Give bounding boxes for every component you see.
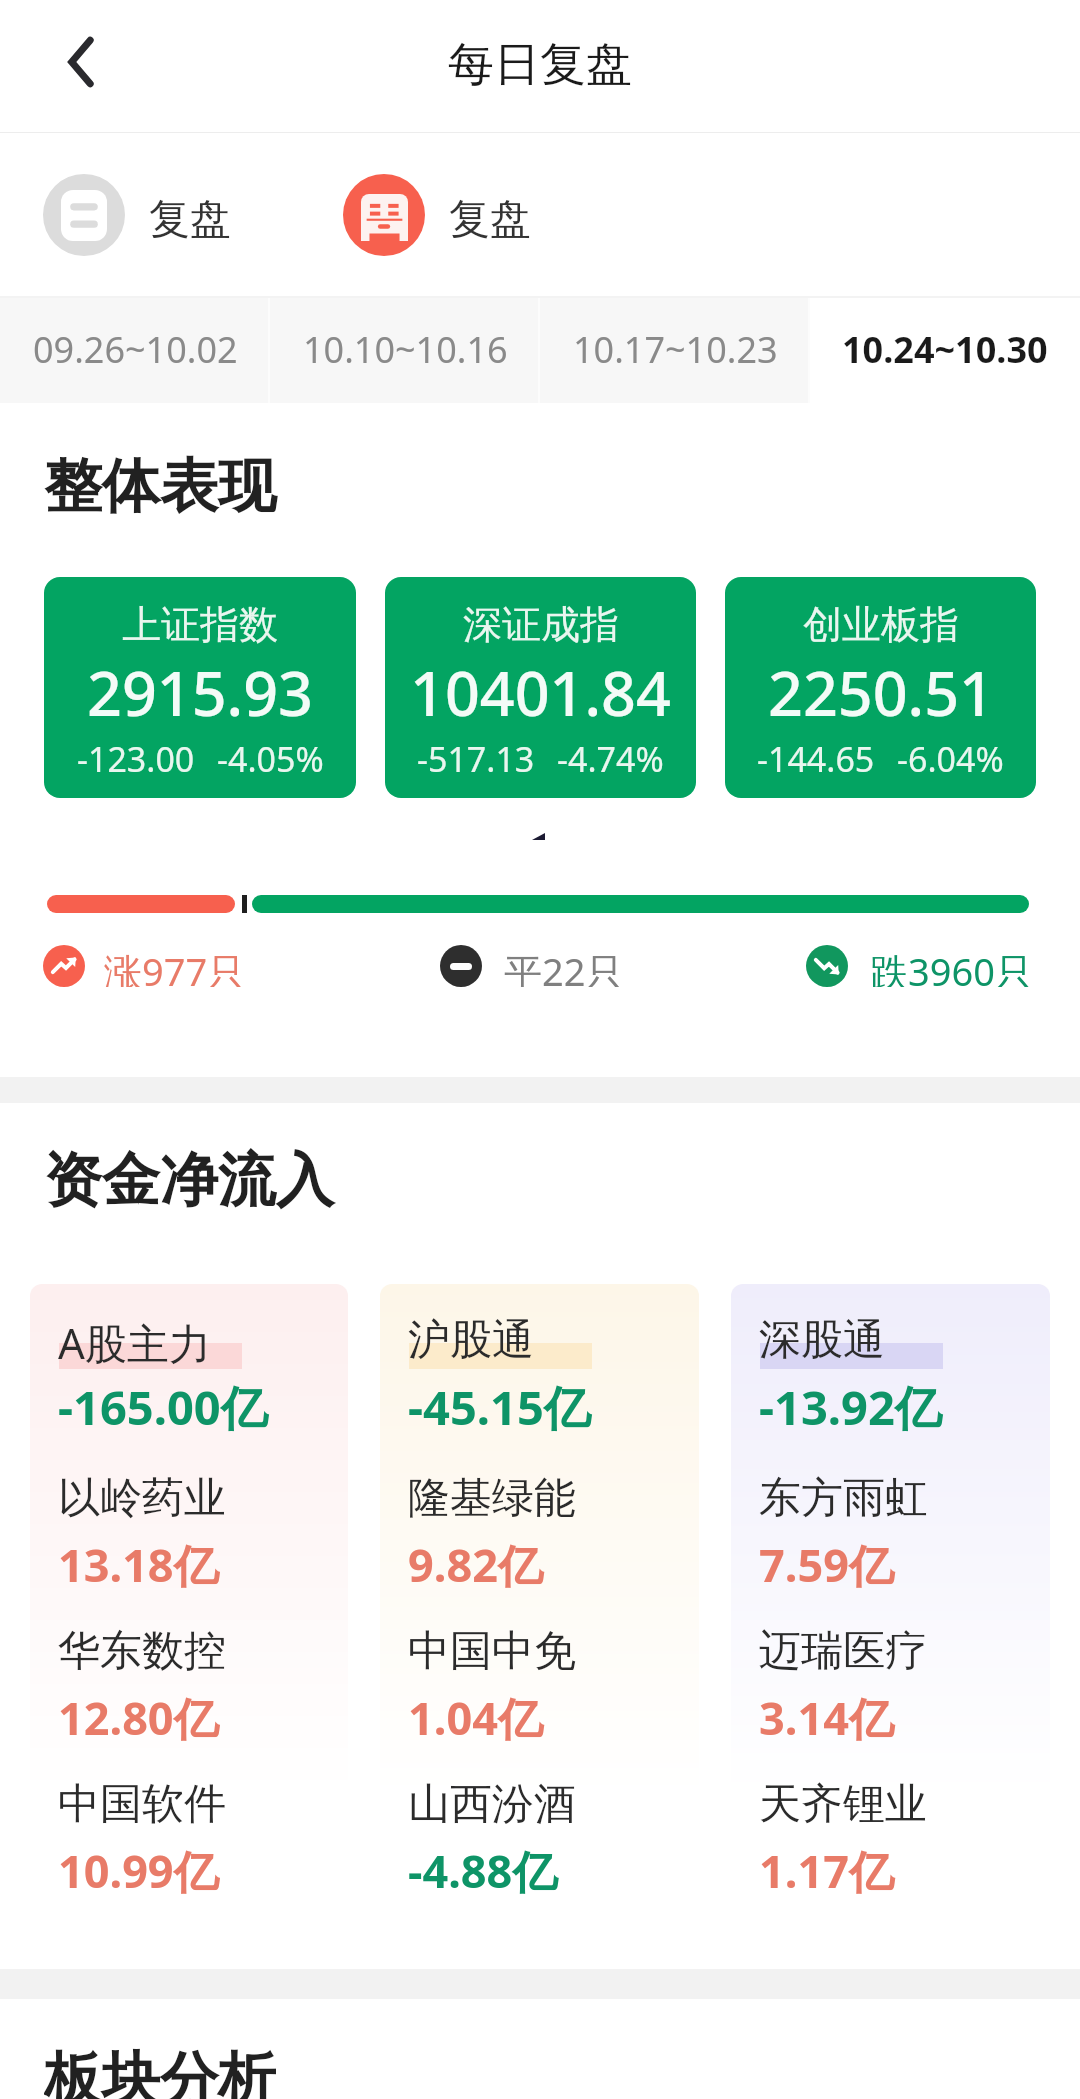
staticText: 复盘 bbox=[449, 194, 531, 246]
staticText: 12.80亿 bbox=[58, 1687, 219, 1748]
button[interactable]: Back bbox=[37, 20, 121, 104]
staticText: 创业板指 bbox=[803, 600, 959, 649]
staticText: 1.04亿 bbox=[408, 1687, 543, 1748]
button[interactable]: 09.26~10.02 bbox=[0, 296, 270, 403]
staticText: A股主力 bbox=[58, 1314, 211, 1371]
staticText: 深证成指 bbox=[463, 600, 619, 649]
staticText: 10.17~10.23 bbox=[573, 325, 778, 374]
staticText: 整体表现 bbox=[44, 450, 276, 523]
staticText: -4.74% bbox=[557, 736, 664, 782]
other: Advancing bbox=[43, 945, 85, 987]
staticText: 沪股通 bbox=[408, 1314, 534, 1367]
staticText: 复盘 bbox=[149, 194, 231, 246]
staticText: 9.82亿 bbox=[408, 1534, 543, 1595]
staticText: 09.26~10.02 bbox=[33, 325, 238, 374]
button[interactable]: 深证成指 bbox=[385, 577, 696, 798]
staticText: 东方雨虹 bbox=[759, 1472, 927, 1525]
staticText: 山西汾酒 bbox=[408, 1778, 576, 1831]
staticText: -165.00亿 bbox=[58, 1375, 268, 1439]
button[interactable]: 上证指数 bbox=[44, 577, 356, 798]
other: Unchanged bbox=[440, 945, 482, 987]
staticText: -517.13 bbox=[417, 736, 535, 782]
button[interactable]: Advancing bbox=[43, 945, 246, 987]
staticText: 10.24~10.30 bbox=[842, 325, 1048, 374]
staticText: 天齐锂业 bbox=[759, 1778, 927, 1831]
staticText: 10401.84 bbox=[410, 651, 671, 734]
staticText: -6.04% bbox=[897, 736, 1004, 782]
staticText: 3.14亿 bbox=[759, 1687, 894, 1748]
staticText: 华东数控 bbox=[58, 1625, 226, 1678]
button[interactable]: 深股通 bbox=[731, 1284, 1050, 1924]
button[interactable]: Unchanged bbox=[440, 945, 624, 987]
staticText: 涨977只 bbox=[104, 945, 246, 987]
staticText: 跌3960只 bbox=[870, 945, 1033, 987]
staticText: 以岭药业 bbox=[58, 1472, 226, 1525]
staticText: -45.15亿 bbox=[408, 1375, 591, 1439]
button[interactable]: 10.17~10.23 bbox=[540, 296, 810, 403]
staticText: -4.88亿 bbox=[408, 1840, 558, 1901]
staticText: 1.17亿 bbox=[759, 1840, 894, 1901]
button[interactable]: 10.10~10.16 bbox=[270, 296, 540, 403]
staticText: -13.92亿 bbox=[759, 1375, 942, 1439]
button[interactable]: 10.24~10.30 bbox=[810, 296, 1080, 403]
staticText: 板块分析 bbox=[44, 2043, 276, 2099]
staticText: 2915.93 bbox=[87, 651, 313, 734]
staticText: 迈瑞医疗 bbox=[759, 1625, 927, 1678]
button[interactable]: 复盘 bbox=[43, 174, 231, 256]
button[interactable]: 创业板指 bbox=[725, 577, 1036, 798]
staticText: 平22只 bbox=[504, 945, 624, 987]
staticText: 中国中免 bbox=[408, 1625, 576, 1678]
staticText: 深股通 bbox=[759, 1314, 885, 1367]
staticText: 7.59亿 bbox=[759, 1534, 894, 1595]
staticText: 13.18亿 bbox=[58, 1534, 219, 1595]
staticText: 上证指数 bbox=[122, 600, 278, 649]
button[interactable]: 复盘 bbox=[343, 174, 531, 256]
other: Declining bbox=[806, 945, 848, 987]
staticText: 2250.51 bbox=[768, 651, 994, 734]
staticText: 隆基绿能 bbox=[408, 1472, 576, 1525]
staticText: 中国软件 bbox=[58, 1778, 226, 1831]
staticText: -123.00 bbox=[77, 736, 195, 782]
button[interactable]: A股主力 bbox=[30, 1284, 348, 1924]
staticText: -4.05% bbox=[217, 736, 324, 782]
staticText: 资金净流入 bbox=[44, 1144, 334, 1217]
button[interactable]: 沪股通 bbox=[380, 1284, 699, 1924]
staticText: 10.99亿 bbox=[58, 1840, 219, 1901]
staticText: 每日复盘 bbox=[448, 36, 632, 94]
button[interactable]: Declining bbox=[806, 945, 1033, 987]
staticText: 10.10~10.16 bbox=[303, 325, 508, 374]
staticText: -144.65 bbox=[757, 736, 875, 782]
